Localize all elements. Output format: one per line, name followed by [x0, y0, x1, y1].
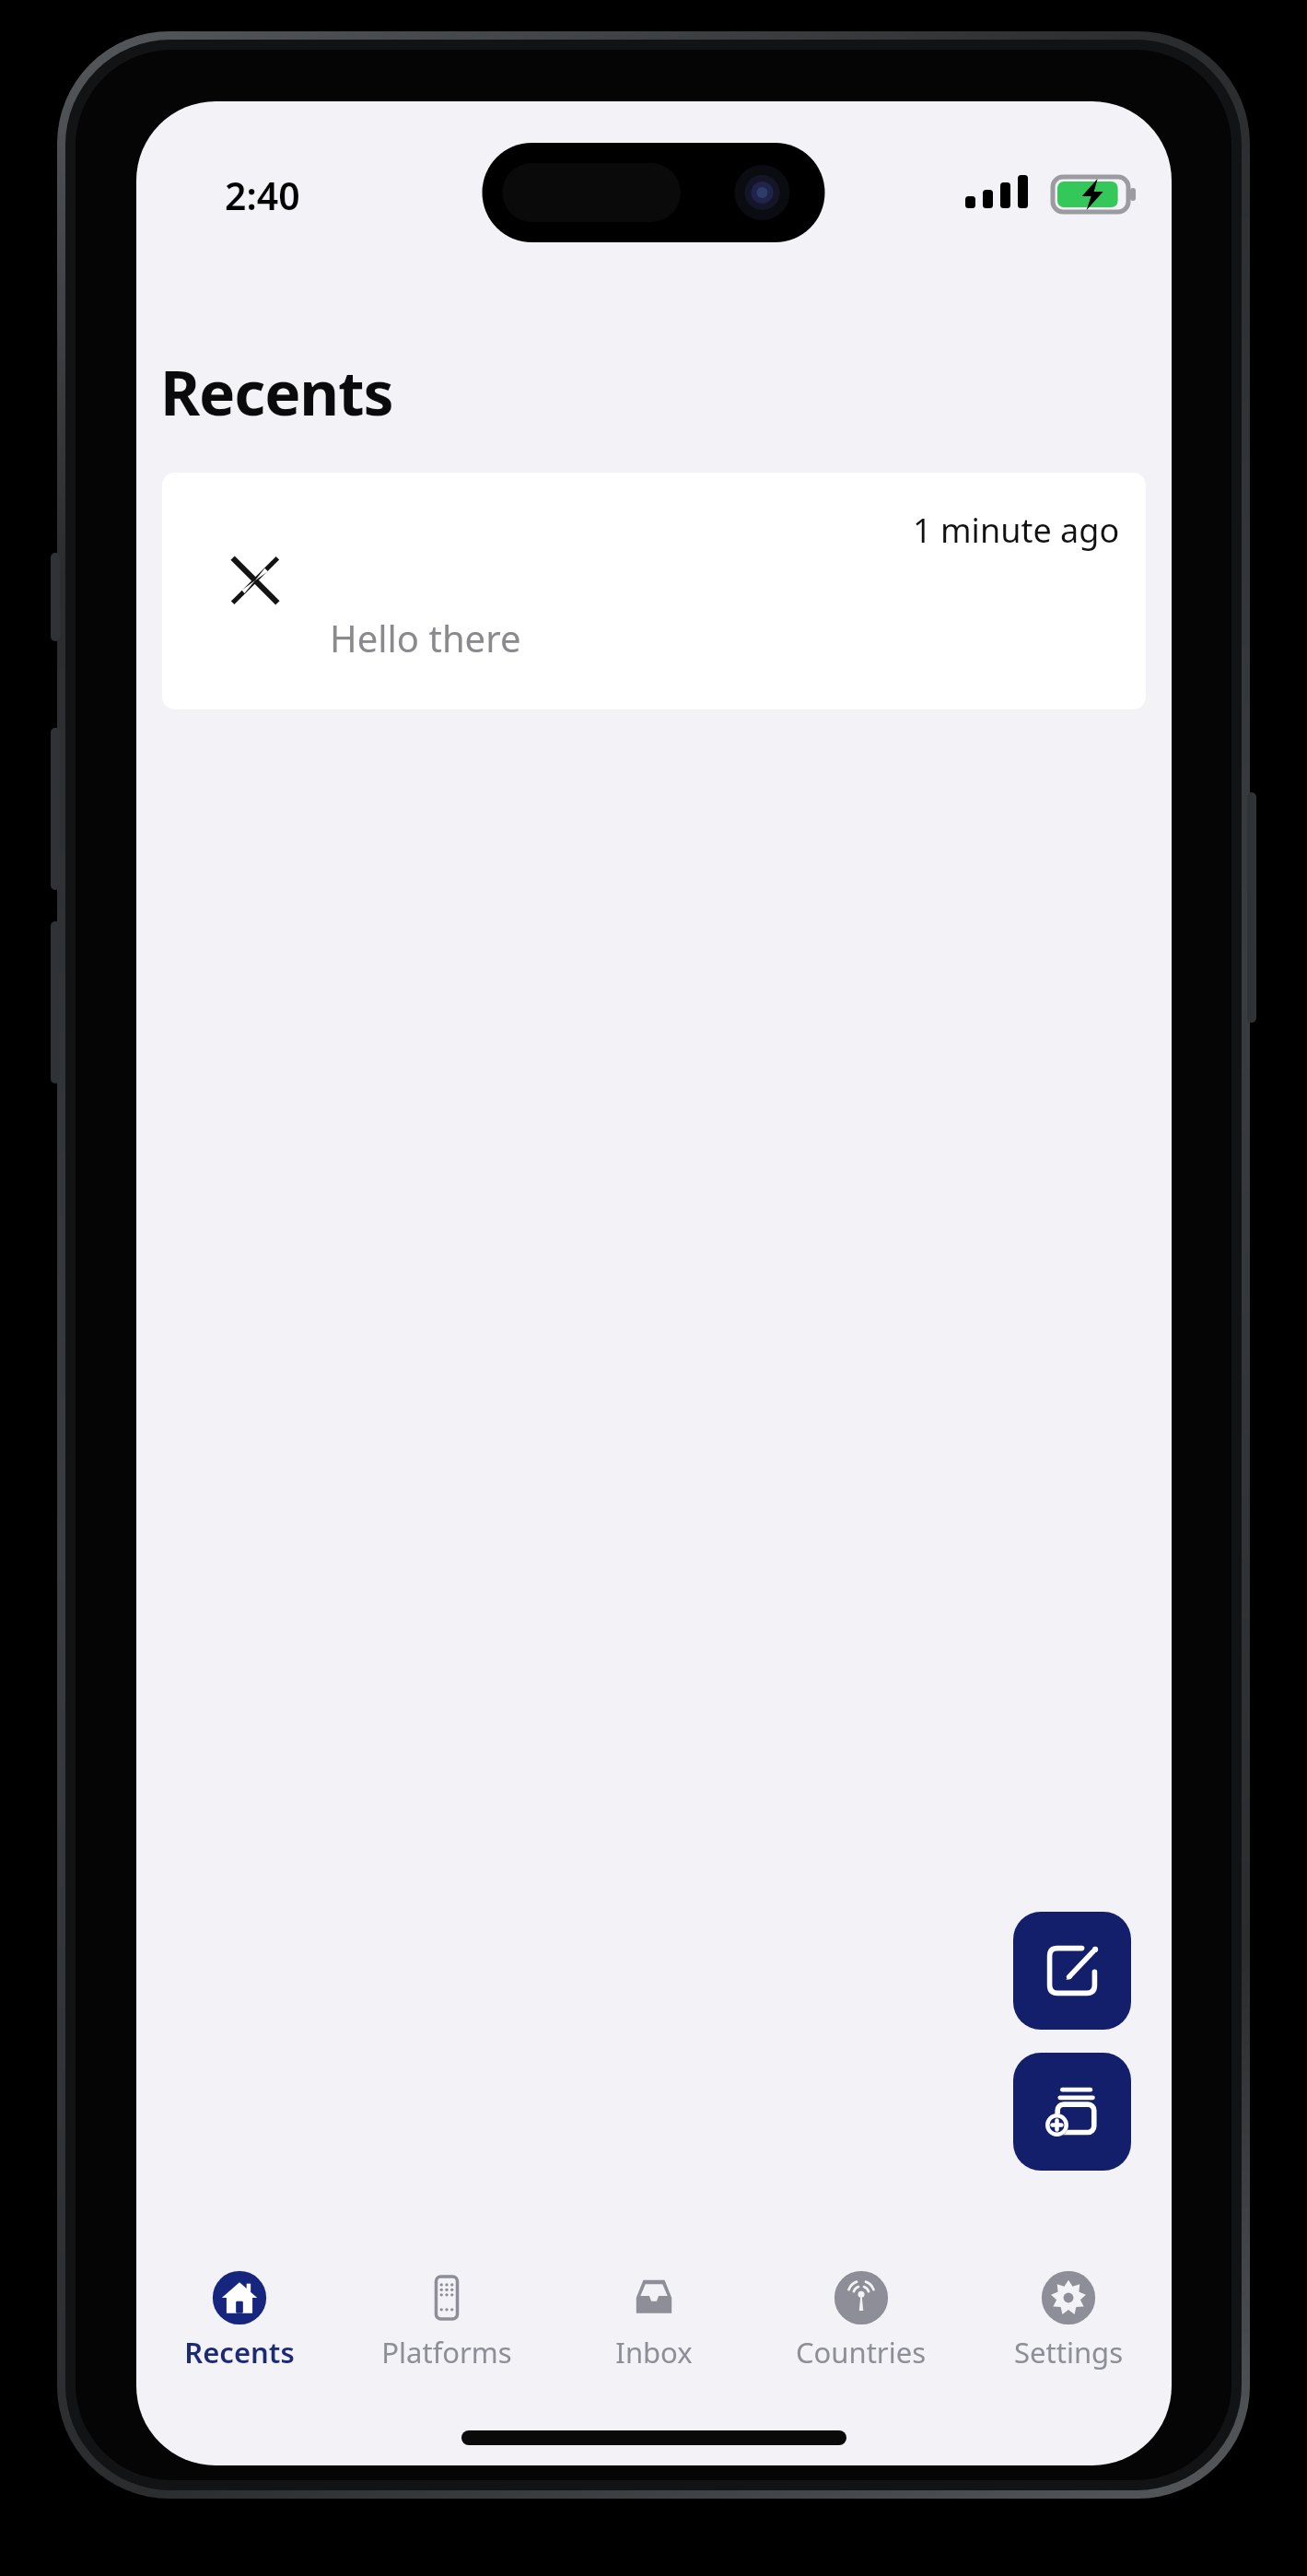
staticText: Settings: [1014, 2333, 1123, 2371]
staticText: Countries: [796, 2333, 926, 2371]
staticText: Recents: [160, 350, 393, 433]
staticText: Recents: [184, 2333, 295, 2371]
other: X: [228, 554, 282, 607]
button[interactable]: Settings: [964, 2261, 1172, 2371]
button[interactable]: New conversation: [1013, 2053, 1131, 2171]
staticText: Hello there: [330, 613, 521, 662]
staticText: 2:40: [225, 170, 300, 221]
button[interactable]: Compose message: [1013, 1912, 1131, 2030]
staticText: Inbox: [615, 2333, 693, 2371]
button[interactable]: 1 minute ago: [162, 473, 1146, 709]
button[interactable]: Platforms: [343, 2261, 550, 2371]
staticText: Platforms: [381, 2333, 512, 2371]
button[interactable]: Inbox: [550, 2261, 757, 2371]
button[interactable]: Countries: [757, 2261, 964, 2371]
staticText: 1 minute ago: [913, 508, 1120, 553]
button[interactable]: Recents: [136, 2261, 343, 2371]
